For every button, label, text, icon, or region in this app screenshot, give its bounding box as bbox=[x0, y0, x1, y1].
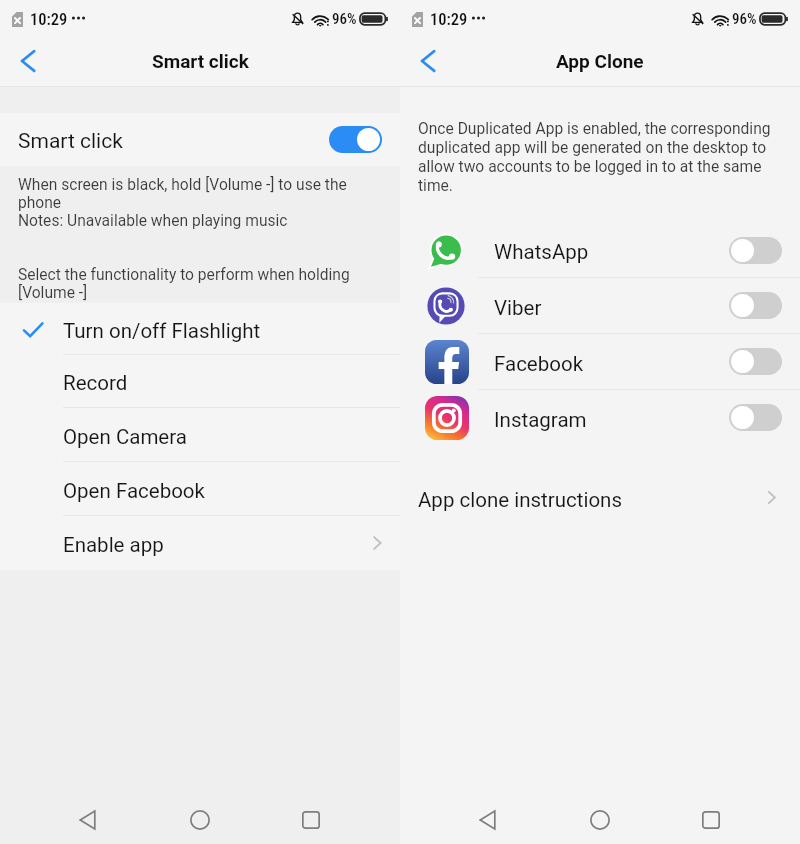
button[interactable]: Switch off bbox=[729, 292, 782, 319]
button[interactable]: Turn on/off Flashlight bbox=[0, 303, 400, 355]
staticText: Open Camera bbox=[63, 425, 187, 449]
staticText: Turn on/off Flashlight bbox=[63, 319, 261, 343]
button[interactable]: WhatsApp bbox=[400, 223, 800, 278]
button[interactable]: Switch off bbox=[729, 237, 782, 264]
staticText: Smart click bbox=[18, 129, 123, 154]
button[interactable]: Back bbox=[459, 792, 515, 844]
staticText: Smart click bbox=[152, 50, 249, 72]
button[interactable]: Back bbox=[7, 41, 51, 85]
button[interactable]: Switch on bbox=[329, 126, 382, 153]
button[interactable]: Record bbox=[0, 355, 400, 408]
button[interactable]: Switch off bbox=[729, 348, 782, 375]
staticText: App Clone bbox=[556, 50, 644, 72]
staticText: Record bbox=[63, 371, 128, 395]
button[interactable]: Open Facebook bbox=[0, 462, 400, 516]
staticText: Once Duplicated App is enabled, the corr… bbox=[418, 119, 771, 195]
button[interactable]: Recent apps bbox=[683, 792, 739, 844]
staticText: Viber bbox=[494, 296, 542, 320]
staticText: When screen is black, hold [Volume -] to… bbox=[18, 176, 350, 302]
staticText: 10:29 bbox=[30, 10, 68, 29]
button[interactable]: App clone instructions bbox=[400, 475, 800, 520]
button[interactable]: Enable app bbox=[0, 516, 400, 570]
staticText: App clone instructions bbox=[418, 488, 623, 512]
staticText: 10:29 bbox=[430, 10, 468, 29]
button[interactable]: Back bbox=[407, 41, 451, 85]
button[interactable]: Back bbox=[59, 792, 115, 844]
button[interactable]: Instagram bbox=[400, 390, 800, 445]
button[interactable]: Open Camera bbox=[0, 408, 400, 462]
staticText: Open Facebook bbox=[63, 479, 205, 503]
staticText: 96% bbox=[332, 10, 357, 28]
button[interactable]: Viber bbox=[400, 278, 800, 334]
button[interactable]: Smart click bbox=[0, 113, 400, 166]
button[interactable]: Home bbox=[172, 792, 228, 844]
staticText: Enable app bbox=[63, 533, 164, 557]
staticText: Facebook bbox=[494, 352, 584, 376]
button[interactable]: Recent apps bbox=[283, 792, 339, 844]
button[interactable]: Switch off bbox=[729, 404, 782, 431]
button[interactable]: Facebook bbox=[400, 334, 800, 390]
button[interactable]: Home bbox=[572, 792, 628, 844]
staticText: WhatsApp bbox=[494, 240, 589, 264]
staticText: 96% bbox=[732, 10, 757, 28]
staticText: Instagram bbox=[494, 408, 587, 432]
